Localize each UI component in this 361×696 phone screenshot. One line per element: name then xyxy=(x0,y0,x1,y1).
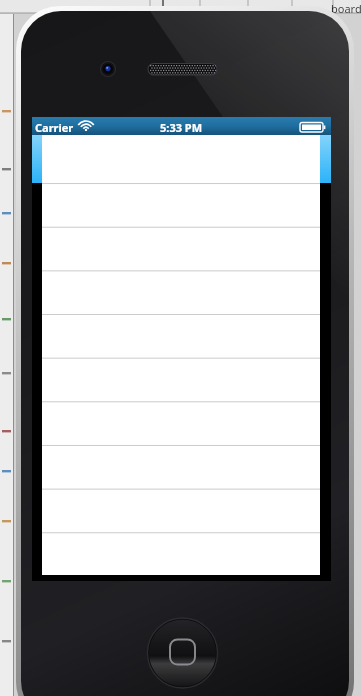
button[interactable]: iPhone Simulator list screen xyxy=(0,0,361,696)
